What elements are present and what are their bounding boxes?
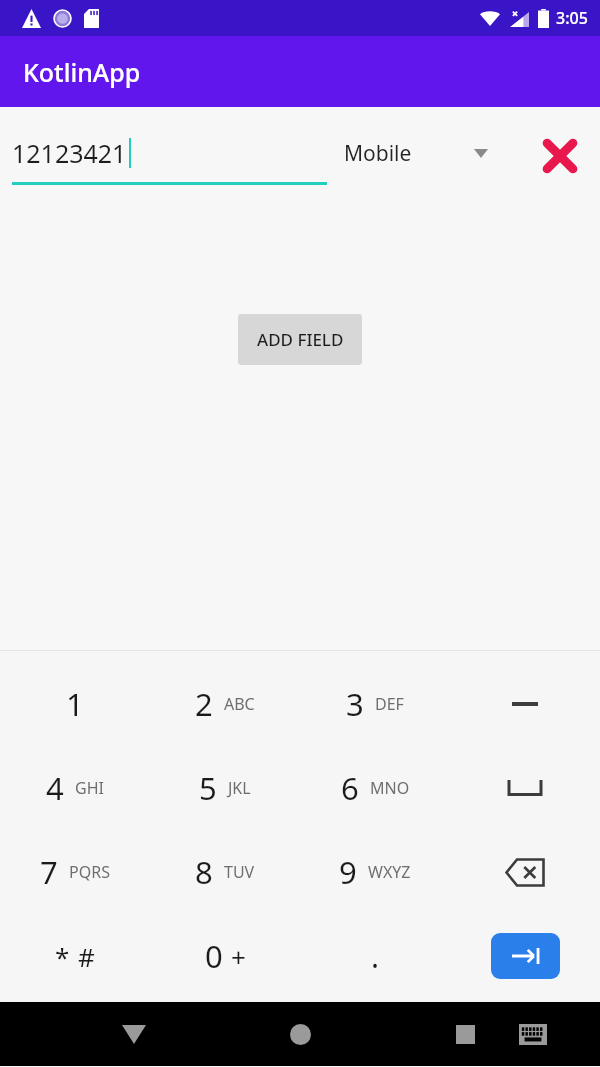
button[interactable]: 1: [0, 662, 150, 746]
button[interactable]: 7: [0, 830, 150, 914]
button[interactable]: 9: [300, 830, 450, 914]
staticText: +: [231, 939, 246, 974]
staticText: 9: [339, 851, 357, 893]
button[interactable]: Mobile: [344, 132, 509, 174]
button[interactable]: Next: [450, 914, 600, 998]
button[interactable]: 3: [300, 662, 450, 746]
staticText: PQRS: [69, 861, 110, 883]
staticText: Mobile: [344, 139, 412, 168]
staticText: GHI: [75, 777, 104, 799]
staticText: TUV: [224, 861, 255, 883]
staticText: ADD FIELD: [257, 328, 344, 351]
staticText: JKL: [228, 777, 251, 799]
staticText: 7: [40, 851, 58, 893]
button[interactable]: Home: [272, 1006, 328, 1062]
button[interactable]: *: [0, 914, 150, 998]
staticText: 12123421: [12, 136, 127, 170]
staticText: WXYZ: [368, 861, 411, 883]
button[interactable]: Backspace: [450, 830, 600, 914]
staticText: 4: [46, 767, 64, 809]
button[interactable]: .: [300, 914, 450, 998]
button[interactable]: 2: [150, 662, 300, 746]
staticText: ABC: [224, 693, 255, 715]
staticText: 5: [199, 767, 217, 809]
button[interactable]: Back: [106, 1006, 162, 1062]
staticText: 3:05: [556, 7, 588, 29]
staticText: .: [371, 936, 380, 977]
button[interactable]: ADD FIELD: [238, 314, 362, 365]
button[interactable]: 8: [150, 830, 300, 914]
staticText: 8: [195, 851, 213, 893]
staticText: *: [55, 939, 70, 974]
staticText: 0: [205, 935, 223, 977]
staticText: 3: [346, 683, 364, 725]
staticText: MNO: [370, 777, 410, 799]
button[interactable]: 12123421: [12, 120, 327, 190]
button[interactable]: 0: [150, 914, 300, 998]
button[interactable]: 5: [150, 746, 300, 830]
button[interactable]: Dash: [450, 662, 600, 746]
staticText: KotlinApp: [23, 55, 141, 89]
button[interactable]: 4: [0, 746, 150, 830]
button[interactable]: Space: [450, 746, 600, 830]
button[interactable]: Recent apps: [437, 1006, 493, 1062]
staticText: 6: [341, 767, 359, 809]
button[interactable]: Remove field: [534, 132, 586, 180]
staticText: 2: [195, 683, 213, 725]
staticText: #: [78, 939, 95, 974]
button[interactable]: 6: [300, 746, 450, 830]
button[interactable]: Switch keyboard: [505, 1006, 561, 1062]
staticText: DEF: [375, 693, 404, 715]
staticText: 1: [66, 683, 84, 725]
